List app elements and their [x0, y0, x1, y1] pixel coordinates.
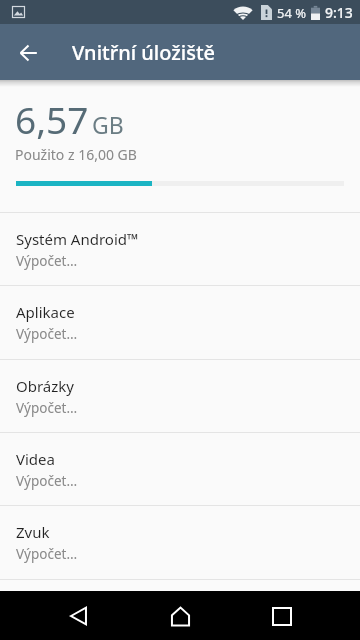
- staticText: Aplikace: [16, 302, 75, 322]
- staticText: Výpočet…: [16, 399, 78, 417]
- staticText: Použito z 16,00 GB: [15, 145, 137, 164]
- staticText: Výpočet…: [16, 545, 78, 563]
- staticText: Výpočet…: [16, 325, 78, 343]
- staticText: 6,57: [15, 94, 89, 144]
- staticText: Zvuk: [16, 522, 50, 542]
- staticText: Výpočet…: [16, 472, 78, 490]
- staticText: 54 %: [277, 4, 307, 22]
- button[interactable]: Zvuk: [0, 505, 360, 578]
- button[interactable]: Recent apps: [258, 592, 306, 640]
- button[interactable]: Back: [54, 592, 102, 640]
- staticText: 9:13: [325, 3, 353, 22]
- staticText: Vnitřní úložiště: [72, 39, 216, 66]
- staticText: Systém Android™: [16, 229, 139, 249]
- button[interactable]: Home: [156, 592, 204, 640]
- button[interactable]: Back: [8, 33, 48, 73]
- staticText: Videa: [16, 449, 55, 469]
- staticText: Obrázky: [16, 376, 74, 396]
- button[interactable]: Systém Android™: [0, 212, 360, 285]
- button[interactable]: Aplikace: [0, 285, 360, 358]
- staticText: Výpočet…: [16, 252, 78, 270]
- button[interactable]: Videa: [0, 432, 360, 505]
- staticText: GB: [92, 109, 124, 140]
- button[interactable]: Obrázky: [0, 359, 360, 432]
